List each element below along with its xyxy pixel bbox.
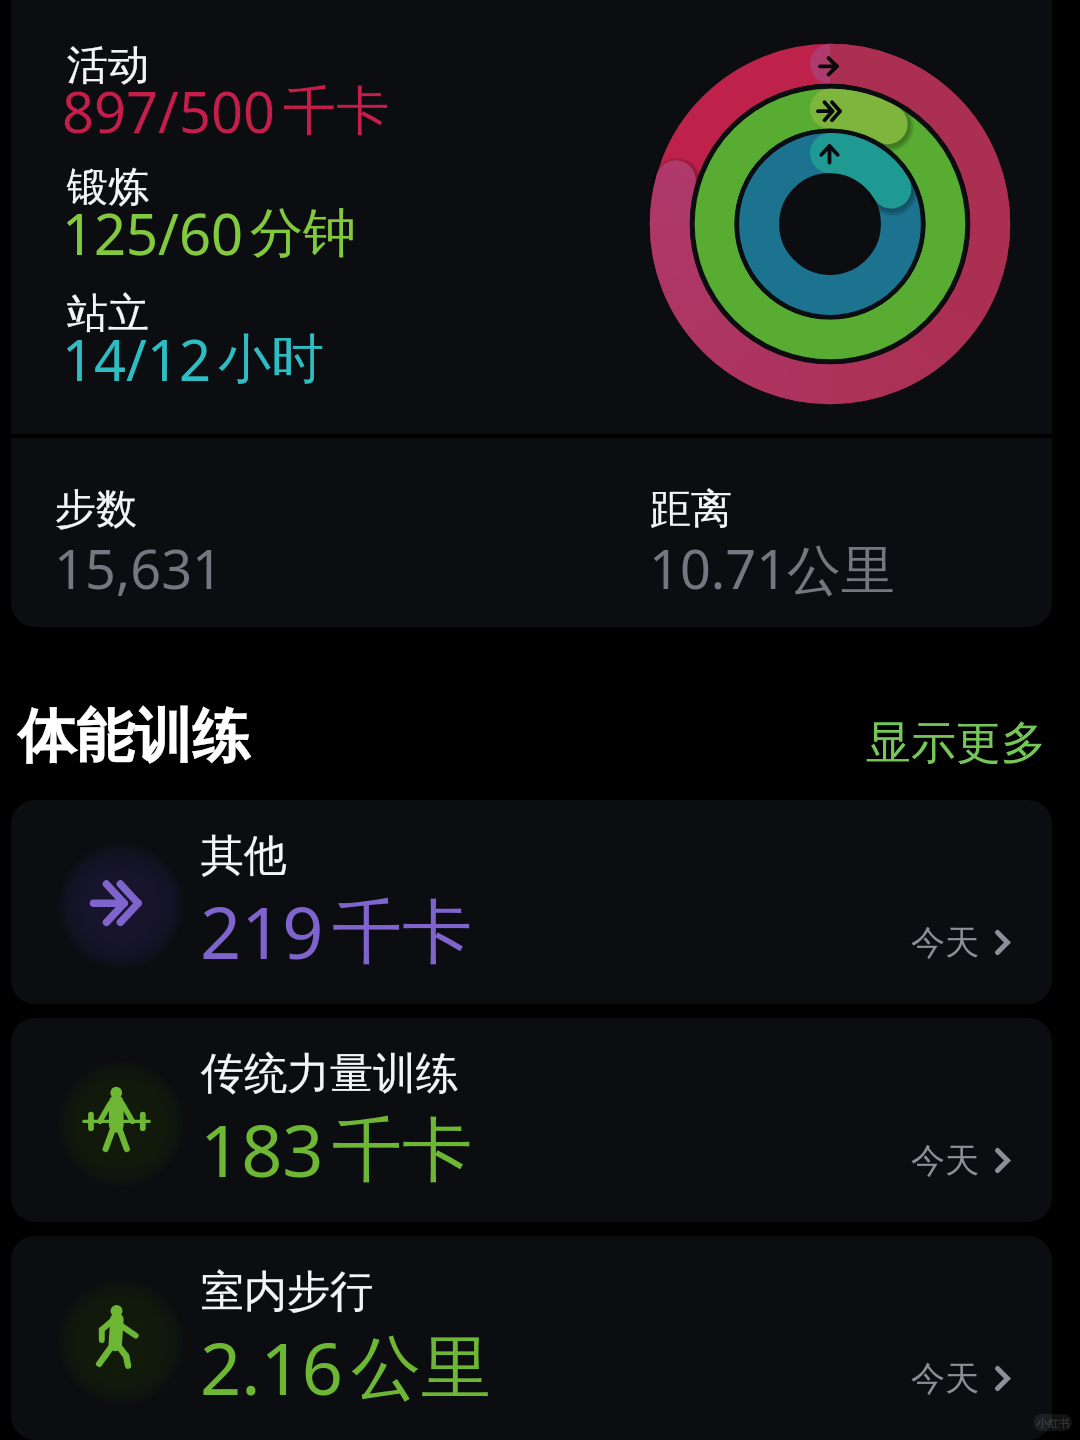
staticText: 活动 (67, 40, 149, 92)
staticText: 千卡 (283, 78, 389, 145)
staticText: 站立 (67, 288, 149, 340)
staticText: 219 (200, 882, 324, 980)
staticText: 千卡 (332, 889, 472, 977)
button[interactable]: 室内步行 (11, 1236, 1052, 1440)
staticText: 其他 (201, 829, 287, 883)
staticText: 今天 (911, 1139, 979, 1182)
staticText: 2.16 (200, 1318, 343, 1416)
staticText: 183 (200, 1100, 324, 1198)
staticText: 小红书 (1037, 1416, 1070, 1430)
staticText: 体能训练 (18, 700, 250, 773)
staticText: 今天 (911, 921, 979, 964)
button[interactable]: 传统力量训练 (11, 1018, 1052, 1222)
staticText: 距离 (650, 484, 732, 536)
staticText: 锻炼 (67, 162, 149, 214)
staticText: 10.71公里 (649, 531, 896, 605)
staticText: 14/12 (62, 321, 211, 397)
button[interactable]: 其他 (11, 800, 1052, 1004)
staticText: 千卡 (332, 1107, 472, 1195)
staticText: 125/60 (62, 195, 243, 271)
staticText: 今天 (911, 1357, 979, 1400)
staticText: 显示更多 (866, 715, 1046, 772)
staticText: 步数 (55, 484, 137, 536)
staticText: 公里 (351, 1325, 491, 1413)
staticText: 15,631 (54, 531, 223, 605)
staticText: 室内步行 (201, 1265, 373, 1319)
staticText: 897/500 (62, 73, 276, 149)
other: Activity rings (640, 34, 1020, 414)
staticText: 分钟 (250, 200, 356, 267)
button[interactable]: 显示更多 (860, 709, 1052, 778)
button[interactable]: 活动 (11, 0, 1052, 627)
staticText: 小时 (218, 326, 324, 393)
staticText: 传统力量训练 (201, 1047, 459, 1101)
